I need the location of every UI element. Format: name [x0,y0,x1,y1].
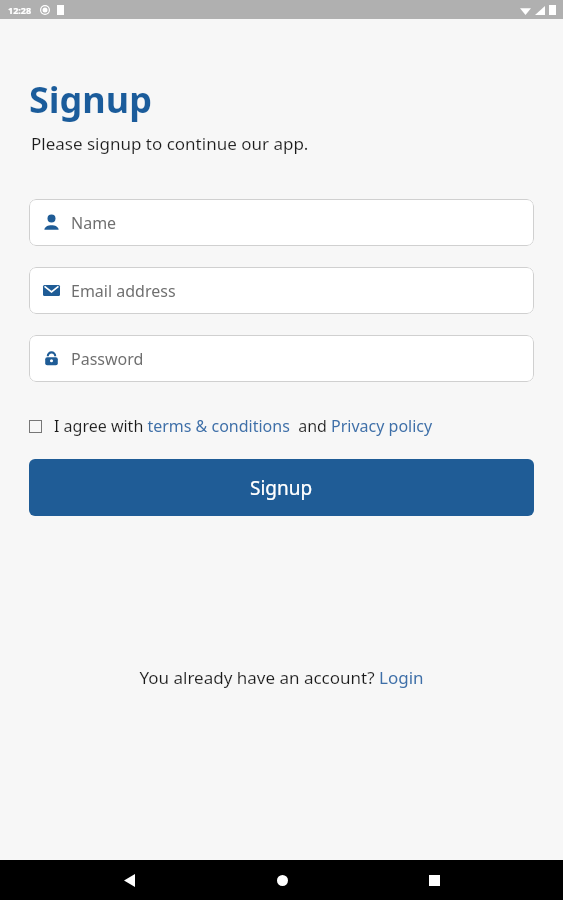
staticText: Name [71,212,117,234]
button[interactable]: Signup [29,459,534,516]
staticText: Password [71,348,144,370]
staticText: Email address [71,280,176,302]
button[interactable]: You already have an account? Login [139,666,424,689]
button[interactable]: Email address [29,267,534,314]
button[interactable]: Password [29,335,534,382]
other: Agree to terms checkbox [29,420,42,433]
button[interactable]: Agree to terms checkbox [29,415,534,437]
button[interactable]: Home [259,860,305,900]
button[interactable]: Name [29,199,534,246]
staticText: You already have an account? Login [139,666,424,689]
button[interactable]: Recent apps [411,860,457,900]
staticText: Signup [250,475,313,501]
staticText: 12:28 [8,4,32,16]
staticText: Signup [29,75,152,124]
staticText: Please signup to continue our app. [31,132,309,155]
button[interactable]: Back [106,860,152,900]
staticText: I agree with terms & conditions and Priv… [54,415,433,437]
